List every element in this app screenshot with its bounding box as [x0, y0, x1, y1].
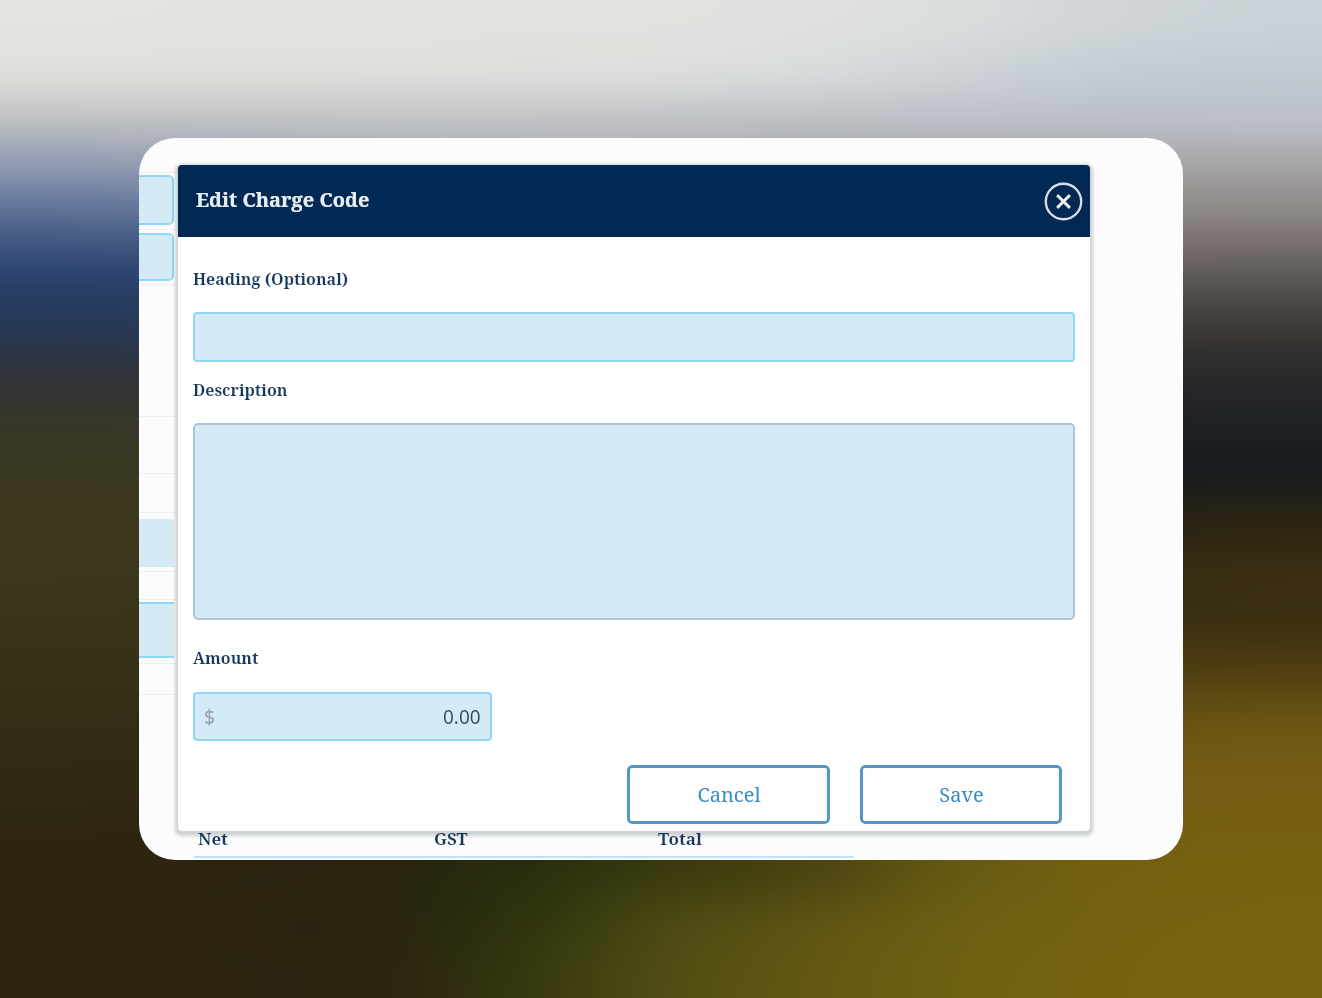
staticText: Edit Charge Code: [196, 186, 370, 213]
button[interactable]: Save: [860, 765, 1062, 824]
staticText: Heading (Optional): [193, 268, 349, 290]
staticText: Description: [193, 379, 288, 401]
staticText: Total: [658, 827, 702, 850]
button[interactable]: $: [193, 692, 492, 741]
staticText: Net: [198, 827, 229, 850]
staticText: $: [204, 704, 215, 730]
button[interactable]: [193, 423, 1075, 620]
button[interactable]: Close: [1041, 179, 1085, 223]
button[interactable]: [193, 312, 1075, 362]
button[interactable]: Cancel: [627, 765, 830, 824]
staticText: 0.00: [443, 704, 481, 730]
staticText: GST: [434, 827, 468, 850]
staticText: Cancel: [697, 781, 761, 808]
staticText: Amount: [193, 647, 259, 669]
staticText: Save: [939, 781, 984, 808]
